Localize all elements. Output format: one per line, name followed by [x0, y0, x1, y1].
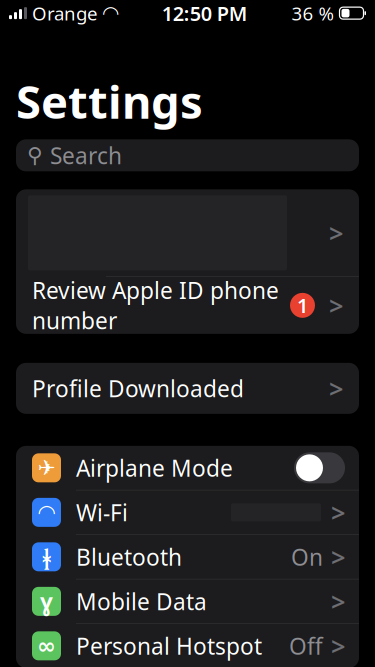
- staticText: ⚲: [27, 143, 43, 167]
- staticText: >: [329, 216, 343, 250]
- staticText: Personal Hotspot: [76, 631, 262, 661]
- button[interactable]: Review Apple ID phone number: [16, 277, 359, 334]
- staticText: Settings: [16, 71, 203, 131]
- staticText: Bluetooth: [76, 542, 182, 572]
- staticText: ◠: [103, 2, 118, 24]
- staticText: ◠: [38, 500, 54, 524]
- staticText: Airplane Mode: [76, 453, 233, 483]
- button[interactable]: >: [16, 189, 359, 276]
- staticText: ✈: [37, 456, 55, 480]
- staticText: ᛡ: [42, 543, 51, 571]
- staticText: Mobile Data: [76, 586, 207, 616]
- staticText: Review Apple ID phone number: [32, 275, 279, 335]
- button[interactable]: ✈: [16, 446, 359, 490]
- button[interactable]: ∞: [16, 624, 359, 667]
- staticText: >: [329, 288, 343, 322]
- button[interactable]: ◠: [16, 490, 359, 534]
- staticText: Wi-Fi: [76, 497, 128, 527]
- staticText: 12:50 PM: [162, 0, 248, 26]
- staticText: Off: [289, 631, 323, 661]
- staticText: Profile Downloaded: [32, 373, 244, 403]
- button[interactable]: ɣ: [16, 579, 359, 623]
- staticText: On: [291, 542, 323, 572]
- staticText: >: [331, 584, 345, 618]
- staticText: ∞: [37, 633, 56, 659]
- staticText: >: [331, 540, 345, 574]
- staticText: >: [331, 629, 345, 663]
- staticText: Orange: [32, 1, 98, 26]
- button[interactable]: ᛡ: [16, 535, 359, 579]
- staticText: >: [331, 495, 345, 529]
- button[interactable]: Profile Downloaded: [16, 363, 359, 414]
- staticText: ɣ: [40, 586, 53, 616]
- staticText: Search: [50, 140, 122, 170]
- staticText: >: [329, 371, 343, 405]
- staticText: 36 %: [291, 1, 334, 26]
- button[interactable]: ⚲: [16, 139, 359, 171]
- staticText: 1: [297, 292, 308, 319]
